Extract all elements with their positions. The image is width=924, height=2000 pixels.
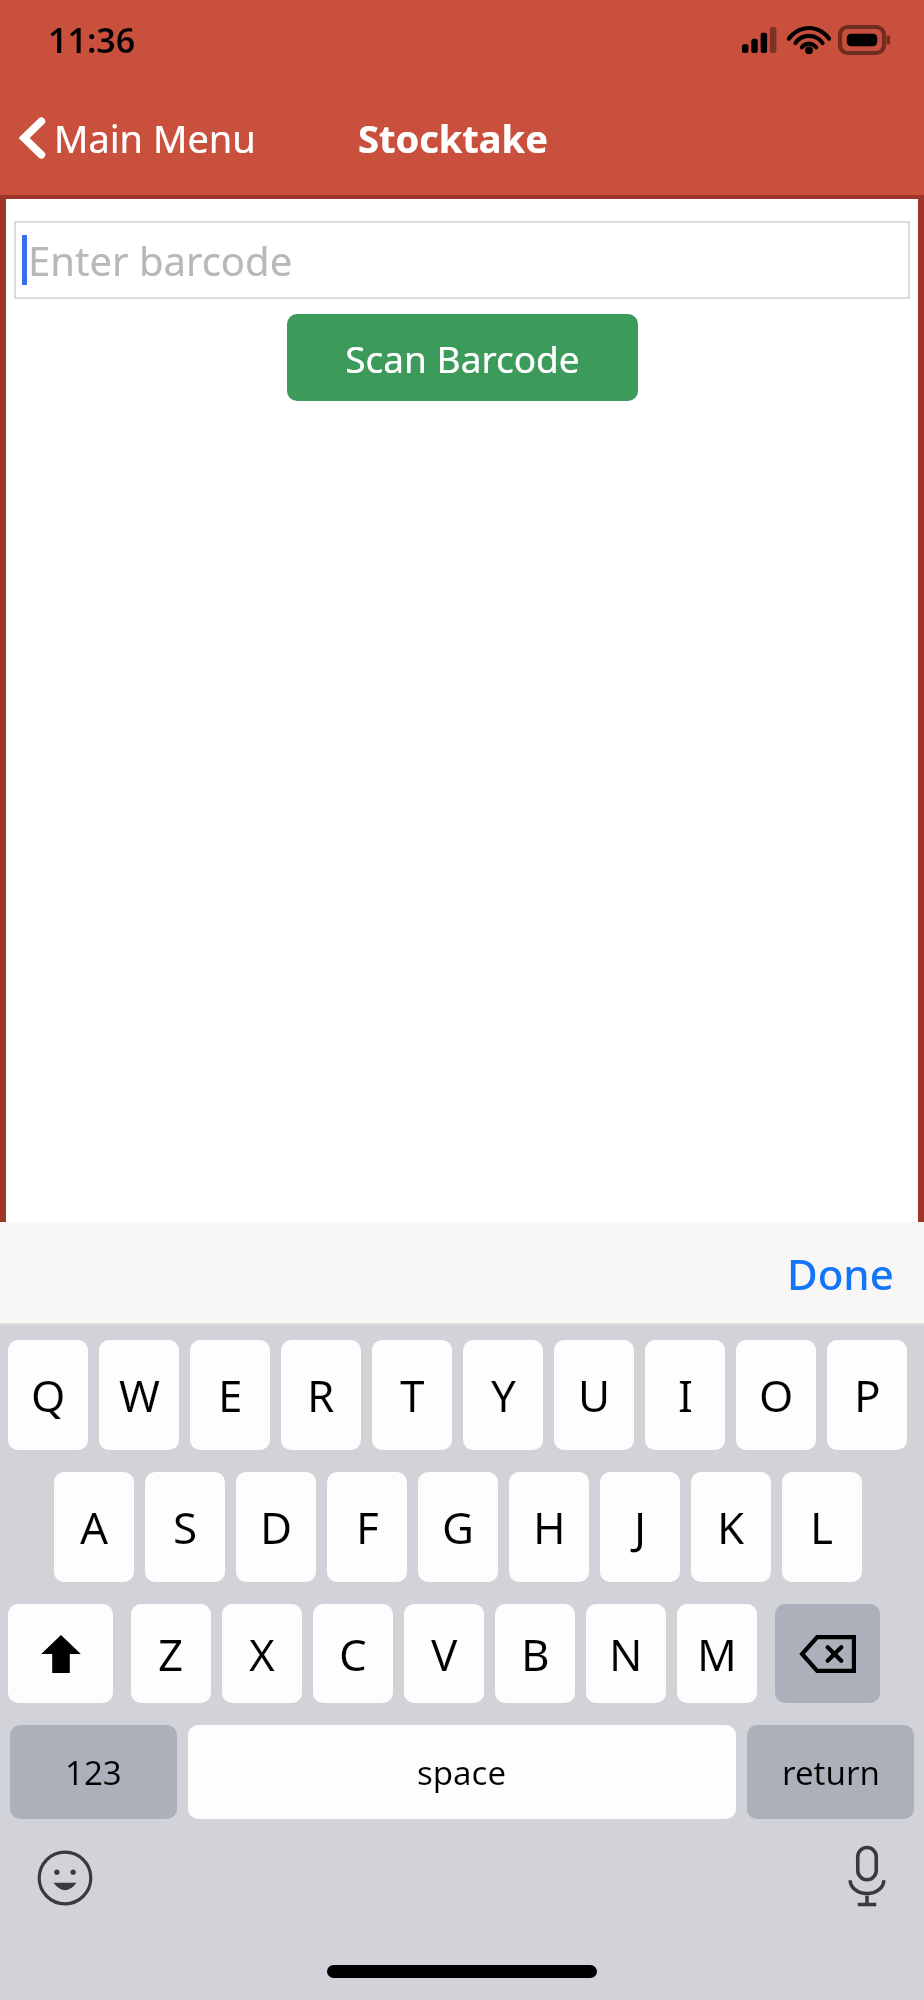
staticText: L: [810, 1497, 834, 1557]
button[interactable]: H: [509, 1472, 589, 1582]
staticText: Q: [31, 1365, 66, 1425]
staticText: X: [249, 1624, 275, 1684]
button[interactable]: Backspace: [775, 1604, 880, 1703]
staticText: J: [634, 1497, 647, 1557]
staticText: Scan Barcode: [345, 333, 580, 383]
button[interactable]: V: [404, 1604, 484, 1703]
button[interactable]: Y: [463, 1340, 543, 1450]
staticText: T: [400, 1365, 425, 1425]
button[interactable]: S: [145, 1472, 225, 1582]
staticText: K: [717, 1497, 745, 1557]
button[interactable]: R: [281, 1340, 361, 1450]
button[interactable]: Scan Barcode: [287, 314, 638, 401]
button[interactable]: Shift: [8, 1604, 113, 1703]
button[interactable]: Z: [131, 1604, 211, 1703]
staticText: U: [578, 1365, 611, 1425]
staticText: P: [854, 1365, 881, 1425]
button[interactable]: I: [645, 1340, 725, 1450]
button[interactable]: B: [495, 1604, 575, 1703]
staticText: N: [609, 1624, 643, 1684]
button[interactable]: Enter barcode: [14, 221, 910, 299]
button[interactable]: N: [586, 1604, 666, 1703]
staticText: Y: [491, 1365, 516, 1425]
staticText: C: [339, 1624, 367, 1684]
button[interactable]: E: [190, 1340, 270, 1450]
staticText: W: [119, 1365, 160, 1425]
button[interactable]: L: [782, 1472, 862, 1582]
button[interactable]: Dictation: [846, 1845, 888, 1907]
button[interactable]: A: [54, 1472, 134, 1582]
staticText: Z: [158, 1624, 184, 1684]
staticText: D: [260, 1497, 293, 1557]
staticText: Done: [787, 1245, 894, 1302]
button[interactable]: Q: [8, 1340, 88, 1450]
staticText: space: [417, 1750, 507, 1795]
staticText: I: [678, 1365, 693, 1425]
staticText: G: [442, 1497, 475, 1557]
button[interactable]: M: [677, 1604, 757, 1703]
button[interactable]: O: [736, 1340, 816, 1450]
staticText: E: [218, 1365, 243, 1425]
button[interactable]: U: [554, 1340, 634, 1450]
button[interactable]: X: [222, 1604, 302, 1703]
staticText: B: [521, 1624, 550, 1684]
staticText: H: [533, 1497, 566, 1557]
button[interactable]: F: [327, 1472, 407, 1582]
button[interactable]: J: [600, 1472, 680, 1582]
staticText: Stocktake: [358, 112, 548, 164]
staticText: O: [759, 1365, 794, 1425]
button[interactable]: space: [188, 1725, 736, 1819]
staticText: R: [307, 1365, 335, 1425]
button[interactable]: Emoji: [36, 1849, 94, 1907]
button[interactable]: D: [236, 1472, 316, 1582]
staticText: 123: [65, 1750, 122, 1795]
button[interactable]: K: [691, 1472, 771, 1582]
button[interactable]: T: [372, 1340, 452, 1450]
button[interactable]: W: [99, 1340, 179, 1450]
staticText: 11:36: [48, 17, 136, 63]
button[interactable]: 123: [10, 1725, 177, 1819]
staticText: F: [356, 1497, 379, 1557]
button[interactable]: return: [747, 1725, 914, 1819]
staticText: A: [80, 1497, 109, 1557]
button[interactable]: Done: [757, 1229, 924, 1318]
button[interactable]: P: [827, 1340, 907, 1450]
button[interactable]: C: [313, 1604, 393, 1703]
staticText: S: [173, 1497, 198, 1557]
staticText: V: [431, 1624, 458, 1684]
staticText: M: [697, 1624, 737, 1684]
staticText: return: [782, 1750, 880, 1795]
button[interactable]: G: [418, 1472, 498, 1582]
staticText: Enter barcode: [28, 233, 293, 287]
staticText: Main Menu: [54, 112, 256, 164]
button[interactable]: Main Menu: [0, 102, 268, 174]
